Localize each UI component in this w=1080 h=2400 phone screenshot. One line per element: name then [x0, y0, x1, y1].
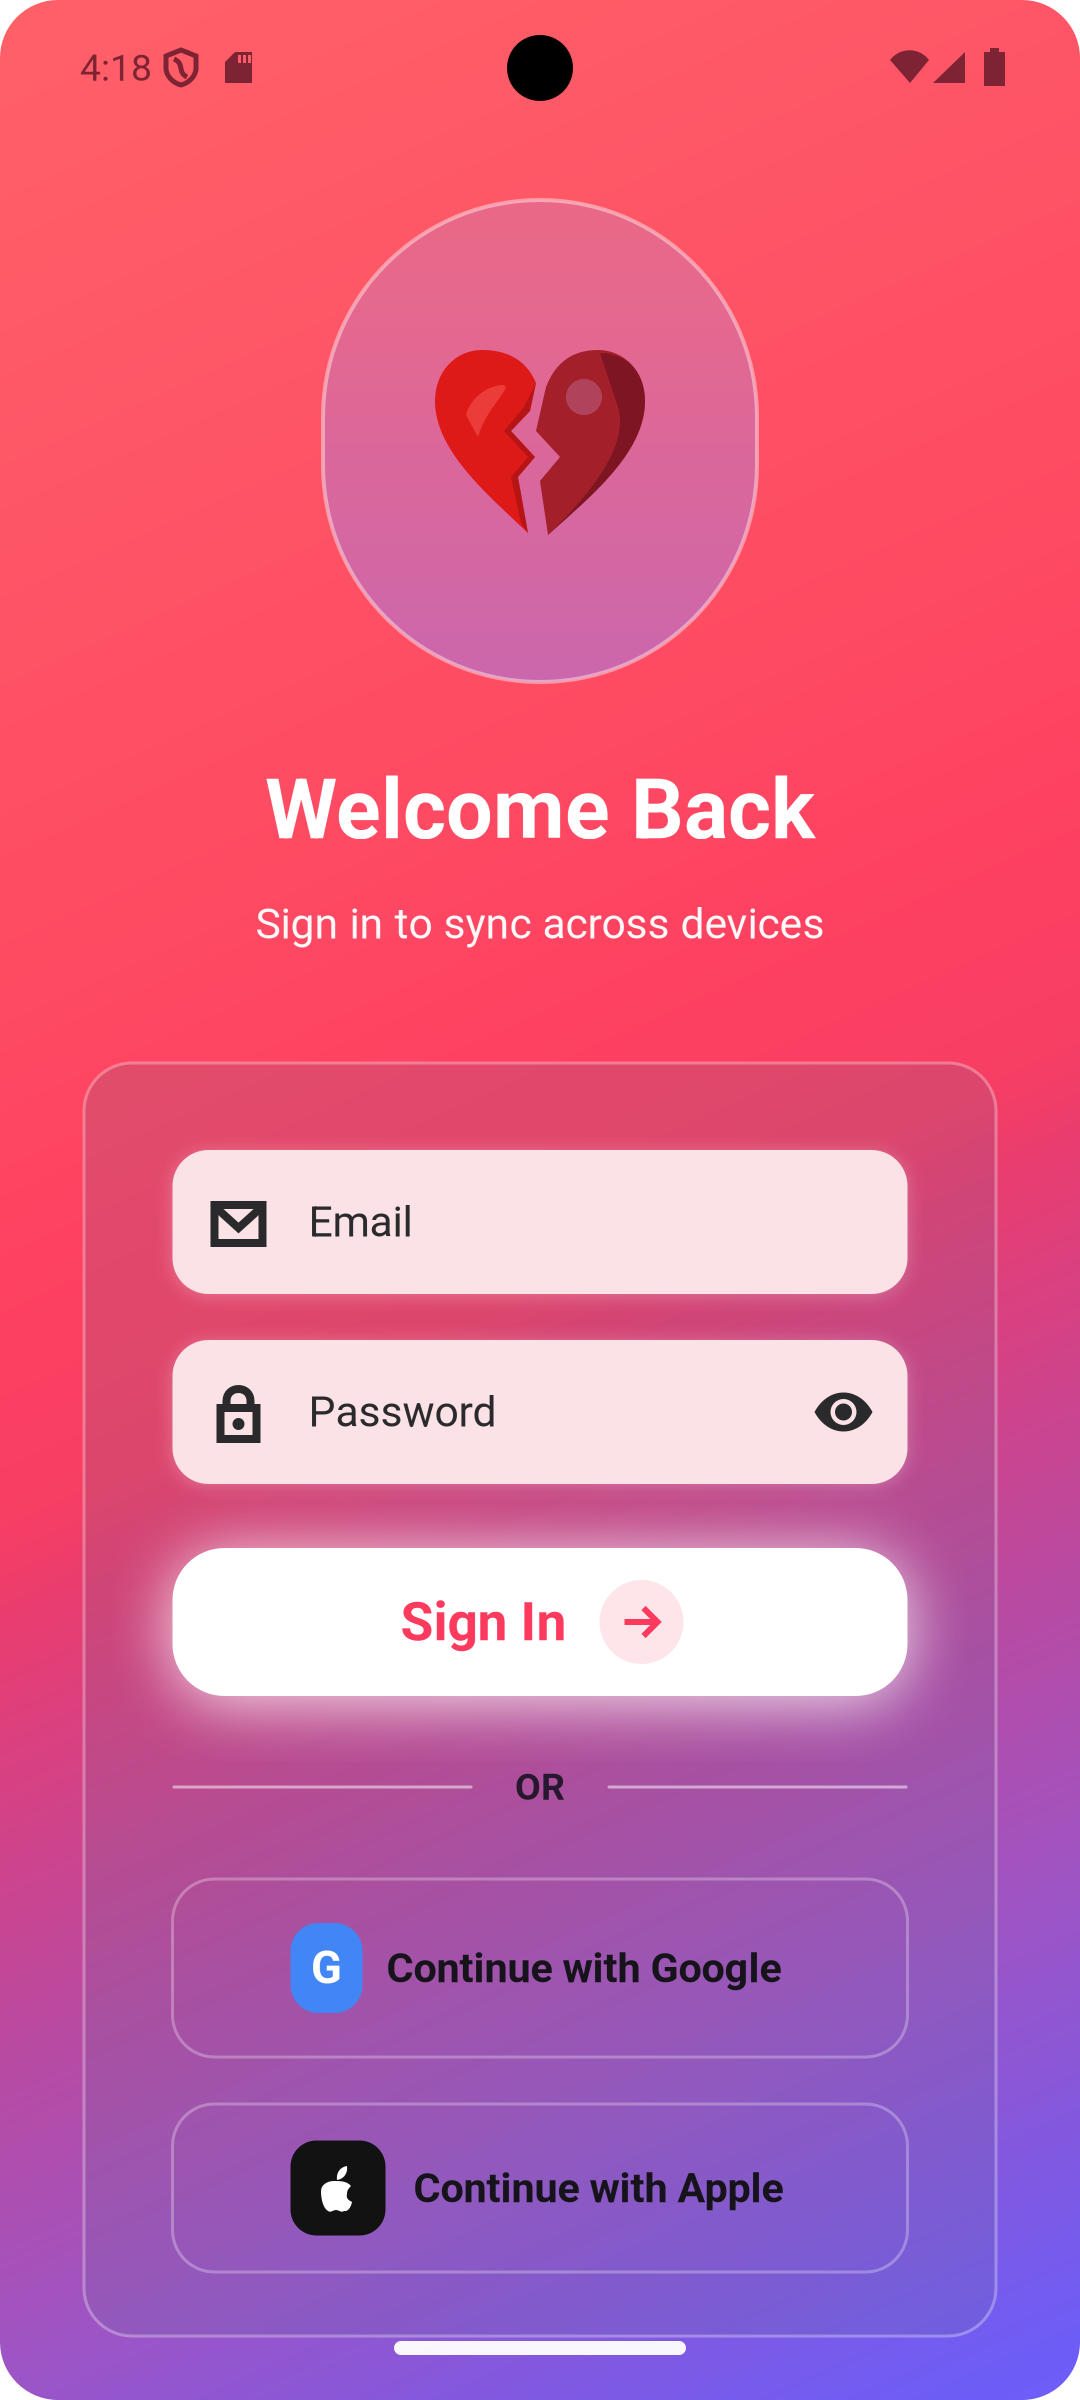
staticText: Sign in to sync across devices — [255, 899, 824, 949]
staticText: G — [311, 1941, 342, 1994]
button[interactable]: Email — [172, 1150, 907, 1294]
staticText: Continue with Apple — [413, 2164, 783, 2212]
button[interactable]: Password — [172, 1340, 907, 1484]
staticText: Email — [308, 1197, 412, 1247]
button[interactable]: Continue with Apple — [172, 2104, 907, 2272]
staticText: Sign In — [400, 1591, 566, 1653]
button[interactable]: Sign In — [172, 1548, 907, 1696]
staticText: OR — [515, 1765, 565, 1809]
button[interactable]: G — [172, 1879, 907, 2057]
staticText: Password — [308, 1387, 496, 1437]
staticText: Welcome Back — [265, 762, 815, 858]
staticText: 4:18 — [80, 46, 152, 90]
staticText: Continue with Google — [386, 1944, 781, 1992]
